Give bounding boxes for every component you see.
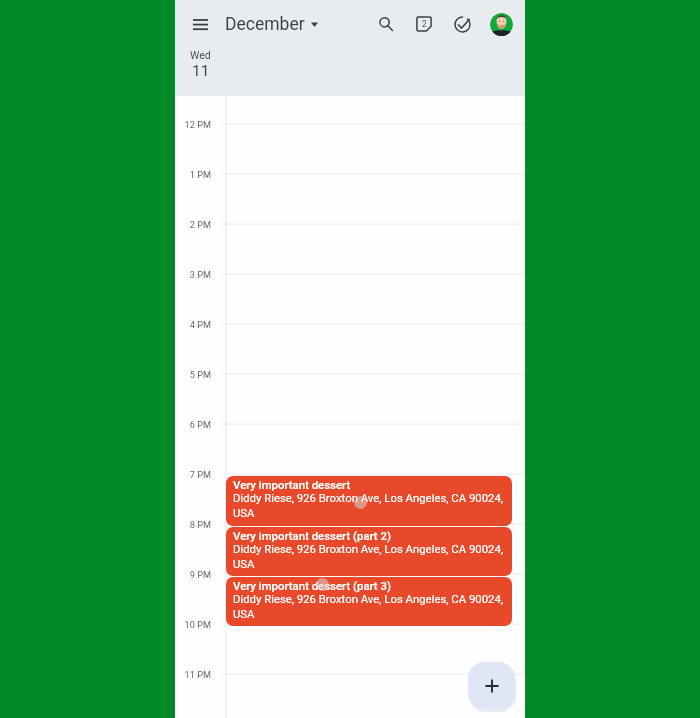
button[interactable]: Very important dessert (part 3) [226,577,512,626]
staticText: 7 PM [175,469,211,480]
staticText: 6 PM [175,419,211,430]
staticText: Diddy Riese, 926 Broxton Ave, Los Angele… [233,542,504,571]
staticText: Very important dessert [233,478,351,491]
button[interactable]: Wed [190,48,232,86]
staticText: 10 PM [175,619,211,630]
staticText: 11 [192,62,210,80]
button[interactable]: Switch view [405,5,443,43]
staticText: 11 PM [175,669,211,680]
staticText: Diddy Riese, 926 Broxton Ave, Los Angele… [233,592,504,621]
button[interactable]: Very important dessert [226,476,512,526]
button[interactable]: Very important dessert (part 2) [226,527,512,576]
staticText: 2 [422,19,427,29]
staticText: December [225,14,305,35]
button[interactable]: Account profile [483,6,519,42]
staticText: 4 PM [175,319,211,330]
staticText: 12 PM [175,119,211,130]
staticText: 5 PM [175,369,211,380]
staticText: 1 PM [175,169,211,180]
button[interactable]: Open navigation menu [184,8,216,40]
button[interactable]: Tasks [443,5,481,43]
button[interactable]: Create new event [468,662,515,709]
staticText: Very important dessert (part 2) [233,529,391,542]
staticText: 3 PM [175,269,211,280]
staticText: Very important dessert (part 3) [233,579,391,592]
staticText: 2 PM [175,219,211,230]
staticText: Diddy Riese, 926 Broxton Ave, Los Angele… [233,491,504,520]
staticText: 9 PM [175,569,211,580]
staticText: 8 PM [175,519,211,530]
staticText: Wed [190,49,211,61]
button[interactable]: Search [367,5,405,43]
button[interactable]: December [225,0,318,48]
